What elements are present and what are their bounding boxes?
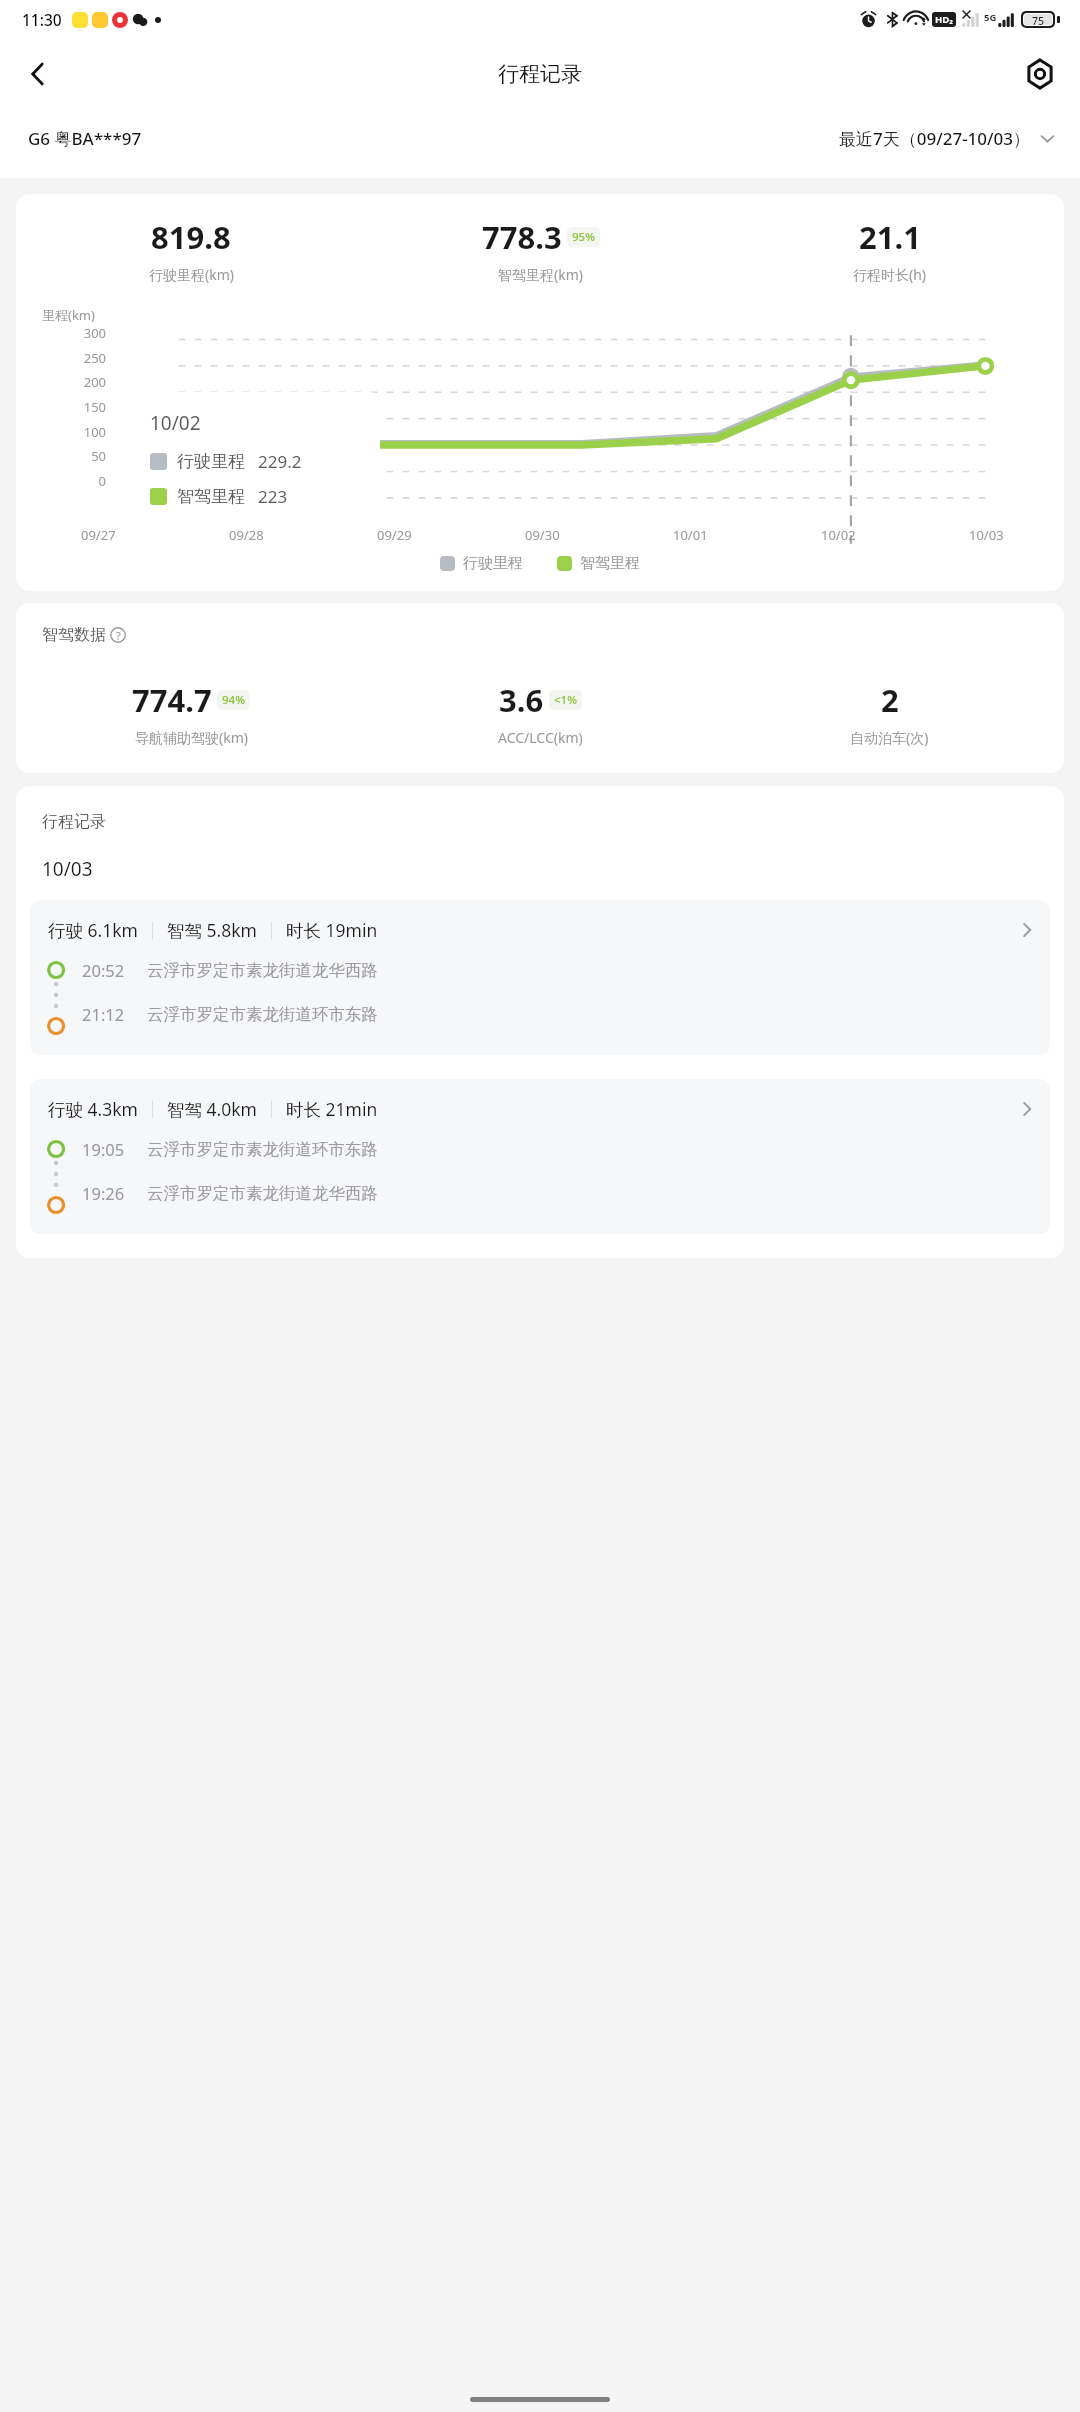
staticText: 行驶里程(km) [149, 265, 234, 284]
staticText: G6 粤BA***97 [28, 127, 142, 150]
staticText: 774.7 [132, 679, 212, 721]
staticText: 150 [83, 398, 106, 416]
staticText: 94% [222, 692, 245, 708]
staticText: 行驶里程 [463, 554, 523, 573]
staticText: 云浮市罗定市素龙街道环市东路 [147, 1004, 378, 1025]
staticText: 21:12 [82, 1003, 125, 1025]
staticText: 云浮市罗定市素龙街道环市东路 [147, 1139, 378, 1160]
staticText: 19:26 [82, 1182, 125, 1204]
staticText: 导航辅助驾驶(km) [135, 728, 248, 747]
staticText: HD₂ [935, 13, 953, 26]
staticText: 20:52 [82, 959, 125, 981]
staticText: 10/02 [821, 526, 856, 544]
button[interactable]: 说明 [109, 626, 127, 644]
button[interactable]: 最近7天（09/27-10/03） [839, 127, 1056, 150]
staticText: 09/27 [81, 526, 116, 544]
staticText: 行程记录 [498, 61, 582, 87]
staticText: 智驾 5.8km [167, 918, 257, 942]
staticText: 09/28 [229, 526, 264, 544]
staticText: 里程(km) [42, 306, 95, 324]
staticText: 100 [83, 423, 106, 441]
staticText: 95% [572, 229, 595, 245]
staticText: 75 [1032, 14, 1045, 25]
staticText: 10/03 [969, 526, 1004, 544]
staticText: 300 [83, 324, 106, 342]
staticText: 50 [91, 447, 106, 465]
staticText: 09/29 [377, 526, 412, 544]
staticText: 0 [98, 472, 106, 490]
staticText: 智驾数据 [42, 625, 106, 645]
button[interactable]: 行驶 4.3km [30, 1079, 1050, 1234]
staticText: 3.6 [499, 679, 544, 721]
staticText: 时长 19min [286, 918, 378, 942]
staticText: <1% [554, 692, 577, 708]
staticText: 10/02 [150, 410, 201, 436]
staticText: 778.3 [482, 216, 562, 258]
button[interactable]: 返回 [12, 48, 64, 100]
staticText: 10/03 [42, 856, 93, 882]
staticText: 行程记录 [42, 812, 106, 832]
staticText: 云浮市罗定市素龙街道龙华西路 [147, 1183, 378, 1204]
staticText: 819.8 [151, 216, 231, 258]
staticText: 自动泊车(次) [850, 728, 929, 747]
staticText: 智驾里程 [580, 554, 640, 573]
staticText: 10/01 [673, 526, 708, 544]
staticText: 智驾里程 [177, 486, 245, 507]
staticText: 智驾里程(km) [498, 265, 583, 284]
staticText: 223 [258, 485, 288, 508]
staticText: 2 [881, 679, 899, 721]
staticText: 最近7天（09/27-10/03） [839, 127, 1031, 150]
staticText: 250 [83, 349, 106, 367]
staticText: 行驶 6.1km [48, 918, 138, 942]
staticText: 行程时长(h) [853, 265, 927, 284]
staticText: 229.2 [258, 450, 302, 473]
staticText: ACC/LCC(km) [498, 728, 583, 747]
staticText: 行驶里程 [177, 451, 245, 472]
button[interactable]: 设置 [1014, 48, 1066, 100]
staticText: 21.1 [859, 216, 921, 258]
staticText: 时长 21min [286, 1097, 378, 1121]
staticText: 200 [83, 373, 106, 391]
staticText: 11:30 [22, 9, 62, 30]
staticText: 19:05 [82, 1138, 125, 1160]
button[interactable]: 行驶 6.1km [30, 900, 1050, 1055]
staticText: 09/30 [525, 526, 560, 544]
staticText: ? [116, 628, 121, 643]
staticText: 行驶 4.3km [48, 1097, 138, 1121]
staticText: 智驾 4.0km [167, 1097, 257, 1121]
staticText: 5G [984, 11, 997, 24]
staticText: 云浮市罗定市素龙街道龙华西路 [147, 960, 378, 981]
